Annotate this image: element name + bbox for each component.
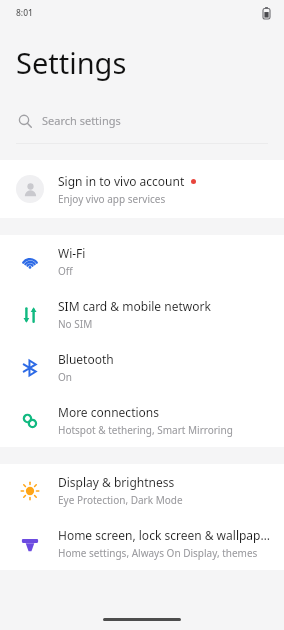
staticText: Eye Protection, Dark Mode xyxy=(58,493,183,507)
staticText: SIM card & mobile network xyxy=(58,298,211,314)
staticText: More connections xyxy=(58,404,159,420)
staticText: No SIM xyxy=(58,317,93,331)
staticText: Sign in to vivo account xyxy=(58,173,185,189)
staticText: Bluetooth xyxy=(58,351,114,367)
button[interactable]: Search settings xyxy=(0,98,284,144)
button[interactable]: Sign in to vivo account xyxy=(0,160,284,218)
staticText: Settings xyxy=(16,43,127,82)
staticText: Off xyxy=(58,264,73,278)
staticText: Display & brightness xyxy=(58,474,175,490)
button[interactable]: More connections xyxy=(0,394,284,447)
button[interactable]: Home screen, lock screen & wallpaper xyxy=(0,517,284,570)
staticText: Home settings, Always On Display, themes xyxy=(58,546,258,560)
button[interactable]: SIM card & mobile network xyxy=(0,288,284,341)
staticText: Enjoy vivo app services xyxy=(58,192,166,206)
staticText: Wi-Fi xyxy=(58,245,86,261)
button[interactable]: Display & brightness xyxy=(0,464,284,517)
staticText: Search settings xyxy=(42,113,121,128)
staticText: Home screen, lock screen & wallpaper xyxy=(58,527,272,543)
button[interactable]: Bluetooth xyxy=(0,341,284,394)
staticText: 8:01 xyxy=(16,7,33,19)
staticText: Hotspot & tethering, Smart Mirroring xyxy=(58,423,233,437)
button[interactable]: Wi-Fi xyxy=(0,235,284,288)
staticText: On xyxy=(58,370,72,384)
